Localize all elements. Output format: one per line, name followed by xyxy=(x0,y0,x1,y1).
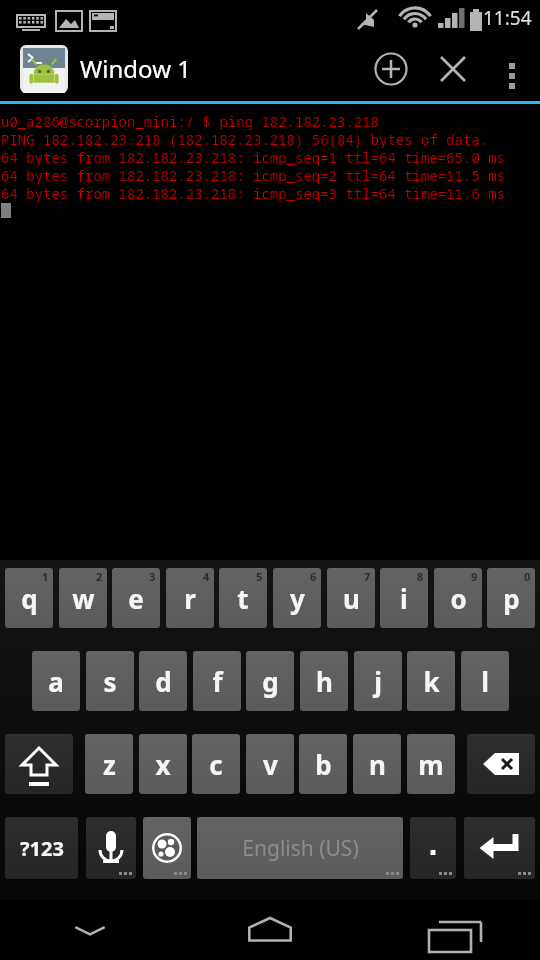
staticText: u0_a286@scorpion_mini:/ $ ping 182.182.2… xyxy=(1,112,379,130)
staticText: s xyxy=(103,664,117,699)
button[interactable]: k xyxy=(407,651,455,711)
button[interactable]: f xyxy=(193,651,241,711)
button[interactable]: New window xyxy=(360,36,422,101)
button[interactable]: v xyxy=(246,734,294,794)
staticText: 8 xyxy=(417,569,424,584)
button[interactable]: w xyxy=(59,568,107,628)
button[interactable]: y xyxy=(273,568,321,628)
button[interactable]: Change language xyxy=(143,817,191,879)
button[interactable]: o xyxy=(434,568,482,628)
staticText: m xyxy=(418,747,444,782)
staticText: PING 182.182.23.218 (182.182.23.218) 56(… xyxy=(1,130,489,148)
button[interactable]: x xyxy=(139,734,187,794)
staticText: c xyxy=(209,747,223,782)
staticText: 5 xyxy=(256,569,263,584)
staticText: 11:54 xyxy=(483,5,532,31)
button[interactable]: Delete xyxy=(467,734,535,794)
button[interactable]: c xyxy=(192,734,240,794)
staticText: 1 xyxy=(42,569,49,584)
button[interactable]: n xyxy=(353,734,401,794)
button[interactable]: l xyxy=(461,651,509,711)
staticText: 9 xyxy=(471,569,478,584)
button[interactable]: z xyxy=(85,734,133,794)
staticText: English (US) xyxy=(242,834,359,863)
staticText: a xyxy=(48,664,64,699)
staticText: t xyxy=(237,581,249,616)
button[interactable]: j xyxy=(354,651,402,711)
staticText: p xyxy=(503,581,520,616)
button[interactable]: g xyxy=(246,651,294,711)
staticText: 7 xyxy=(364,569,371,584)
staticText: k xyxy=(423,664,440,699)
staticText: ?123 xyxy=(20,835,64,862)
button[interactable]: More options xyxy=(484,36,540,101)
staticText: o xyxy=(450,581,467,616)
staticText: y xyxy=(290,581,305,616)
button[interactable]: Enter xyxy=(464,817,535,879)
button[interactable]: d xyxy=(139,651,187,711)
staticText: r xyxy=(184,581,196,616)
staticText: q xyxy=(21,581,38,616)
button[interactable]: q xyxy=(5,568,53,628)
staticText: i xyxy=(400,581,408,616)
button[interactable]: s xyxy=(86,651,134,711)
staticText: 64 bytes from 182.182.23.218: icmp_seq=1… xyxy=(1,148,505,166)
button[interactable]: u0_a286@scorpion_mini:/ $ ping 182.182.2… xyxy=(0,104,540,560)
staticText: u xyxy=(343,581,360,616)
button[interactable]: Shift xyxy=(5,734,73,794)
staticText: h xyxy=(316,664,333,699)
button[interactable]: i xyxy=(380,568,428,628)
button[interactable]: Recent apps xyxy=(360,900,540,960)
staticText: e xyxy=(128,581,144,616)
staticText: 6 xyxy=(310,569,317,584)
button[interactable]: Period xyxy=(410,817,456,879)
staticText: 2 xyxy=(96,569,103,584)
staticText: b xyxy=(315,747,332,782)
button[interactable]: e xyxy=(112,568,160,628)
staticText: x xyxy=(155,747,171,782)
button[interactable]: p xyxy=(487,568,535,628)
button[interactable]: Window 1 xyxy=(0,36,360,101)
staticText: 3 xyxy=(149,569,156,584)
staticText: l xyxy=(481,664,489,699)
button[interactable]: English (US) xyxy=(197,817,403,879)
button[interactable]: u xyxy=(327,568,375,628)
staticText: 64 bytes from 182.182.23.218: icmp_seq=3… xyxy=(1,184,505,202)
staticText: 0 xyxy=(524,569,531,584)
staticText: z xyxy=(103,747,116,782)
staticText: f xyxy=(212,664,223,699)
button[interactable]: b xyxy=(299,734,347,794)
staticText: 4 xyxy=(203,569,210,584)
button[interactable]: a xyxy=(32,651,80,711)
button[interactable]: r xyxy=(166,568,214,628)
button[interactable]: ?123 xyxy=(5,817,78,879)
button[interactable]: Home xyxy=(180,900,360,960)
staticText: d xyxy=(155,664,172,699)
button[interactable]: t xyxy=(219,568,267,628)
button[interactable]: Voice input xyxy=(86,817,136,879)
staticText: n xyxy=(369,747,386,782)
staticText: g xyxy=(262,664,279,699)
staticText: Window 1 xyxy=(80,52,191,85)
staticText: 64 bytes from 182.182.23.218: icmp_seq=2… xyxy=(1,166,505,184)
staticText: j xyxy=(374,664,382,699)
button[interactable]: Close window xyxy=(422,36,484,101)
staticText: v xyxy=(263,747,278,782)
button[interactable]: Hide keyboard xyxy=(0,900,180,960)
staticText: w xyxy=(72,581,95,616)
button[interactable]: m xyxy=(407,734,455,794)
button[interactable]: h xyxy=(300,651,348,711)
